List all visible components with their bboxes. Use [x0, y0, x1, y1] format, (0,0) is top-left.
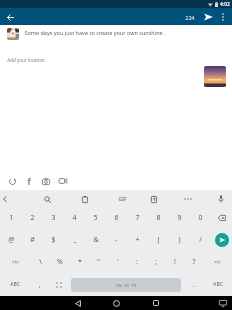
button[interactable]	[136, 296, 175, 310]
button[interactable]: #	[22, 229, 43, 251]
button[interactable]: EN · ES · PT	[68, 273, 184, 296]
button[interactable]: =\<	[0, 251, 30, 273]
staticText: Some days you just have to create your o…	[24, 29, 166, 36]
button[interactable]: 2	[22, 207, 43, 229]
button[interactable]: @	[0, 229, 22, 251]
button[interactable]: f	[22, 174, 36, 188]
button[interactable]	[0, 190, 10, 207]
button[interactable]: ABC	[0, 273, 30, 296]
button[interactable]: :	[127, 251, 146, 273]
button[interactable]: *	[70, 251, 89, 273]
staticText: @	[8, 235, 15, 245]
staticText: 2	[30, 213, 35, 223]
button[interactable]	[56, 174, 70, 188]
button[interactable]: 7	[127, 207, 148, 229]
button[interactable]	[49, 273, 68, 296]
staticText: =\<	[214, 259, 221, 265]
button[interactable]: \	[30, 251, 50, 273]
staticText: +	[135, 235, 140, 245]
button[interactable]: =\<	[203, 251, 232, 273]
button[interactable]	[202, 11, 214, 23]
staticText: 224	[185, 14, 195, 21]
staticText: 4	[72, 213, 77, 223]
button[interactable]: .	[184, 273, 203, 296]
button[interactable]: Add your location	[7, 57, 45, 63]
button[interactable]: %	[50, 251, 70, 273]
button[interactable]	[219, 11, 227, 23]
button[interactable]	[180, 191, 196, 207]
button[interactable]: 6	[106, 207, 127, 229]
staticText: .	[193, 280, 195, 290]
button[interactable]: /	[190, 229, 211, 251]
button[interactable]	[211, 229, 232, 251]
staticText: 8	[156, 213, 161, 223]
staticText: "	[97, 257, 100, 267]
staticText: 4:02	[220, 1, 230, 8]
button[interactable]: 4	[64, 207, 85, 229]
button[interactable]	[4, 11, 16, 23]
staticText: 5	[93, 213, 98, 223]
staticText: _	[73, 235, 77, 245]
button[interactable]	[5, 174, 19, 188]
button[interactable]	[146, 191, 162, 207]
staticText: f	[27, 176, 31, 187]
button[interactable]: $	[43, 229, 64, 251]
button[interactable]	[97, 296, 136, 310]
staticText: GIF	[118, 196, 127, 203]
staticText: EN · ES · PT	[116, 283, 137, 288]
staticText: -	[115, 235, 118, 245]
staticText: =\<	[12, 259, 19, 265]
button[interactable]: 0	[190, 207, 211, 229]
staticText: ,	[39, 280, 41, 290]
staticText: ?	[192, 257, 196, 267]
button[interactable]: +	[127, 229, 148, 251]
staticText: &	[93, 235, 99, 245]
button[interactable]	[39, 174, 53, 188]
button[interactable]: ,	[30, 273, 49, 296]
staticText: 1	[9, 213, 14, 223]
button[interactable]: 5	[85, 207, 106, 229]
button[interactable]	[211, 207, 232, 229]
staticText: *	[78, 257, 82, 267]
staticText: #	[30, 235, 35, 245]
staticText: %	[57, 257, 63, 267]
button[interactable]: 8	[148, 207, 169, 229]
button[interactable]: ?	[184, 251, 203, 273]
staticText: \	[39, 257, 42, 267]
staticText: 3	[51, 213, 56, 223]
staticText: $	[51, 235, 56, 245]
button[interactable]: GIF	[114, 191, 130, 207]
button[interactable]: 3	[43, 207, 64, 229]
button[interactable]	[217, 297, 229, 309]
button[interactable]: !	[165, 251, 184, 273]
button[interactable]: "	[89, 251, 108, 273]
button[interactable]: 9	[169, 207, 190, 229]
button[interactable]: (	[148, 229, 169, 251]
staticText: :	[136, 257, 138, 267]
staticText: Add your location	[7, 57, 45, 63]
button[interactable]	[39, 191, 55, 207]
button[interactable]: &	[85, 229, 106, 251]
button[interactable]: '	[108, 251, 127, 273]
staticText: 7	[135, 213, 140, 223]
staticText: ABC	[213, 281, 223, 288]
staticText: 0	[198, 213, 203, 223]
button[interactable]: ABC	[203, 273, 232, 296]
button[interactable]	[77, 191, 93, 207]
button[interactable]	[213, 191, 229, 207]
staticText: '	[117, 257, 119, 267]
button[interactable]: -	[106, 229, 127, 251]
button[interactable]: 1	[0, 207, 22, 229]
staticText: ;	[155, 257, 157, 267]
button[interactable]	[58, 296, 97, 310]
staticText: !	[174, 257, 176, 267]
staticText: 9	[177, 213, 182, 223]
staticText: (	[157, 235, 160, 245]
staticText: /	[199, 235, 202, 245]
button[interactable]: ;	[146, 251, 165, 273]
staticText: )	[178, 235, 181, 245]
staticText: ABC	[10, 281, 20, 288]
staticText: 6	[114, 213, 119, 223]
button[interactable]: _	[64, 229, 85, 251]
button[interactable]: )	[169, 229, 190, 251]
